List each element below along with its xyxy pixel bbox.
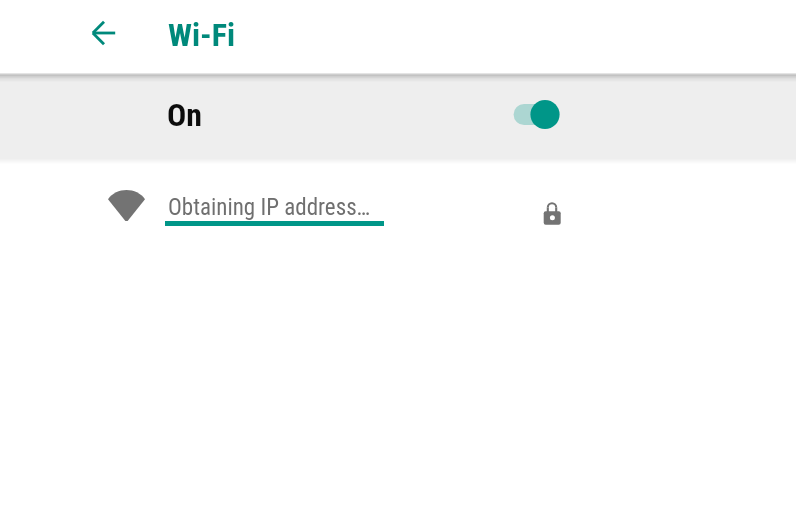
staticText: Obtaining IP address… xyxy=(168,194,371,221)
button[interactable]: On xyxy=(0,73,796,158)
other: Wi-Fi on xyxy=(505,94,575,134)
staticText: Wi-Fi xyxy=(168,16,235,54)
button[interactable]: Obtaining IP address… xyxy=(0,163,796,239)
button[interactable]: Back xyxy=(84,13,124,53)
other: Secured network xyxy=(543,202,561,226)
staticText: On xyxy=(167,96,203,134)
